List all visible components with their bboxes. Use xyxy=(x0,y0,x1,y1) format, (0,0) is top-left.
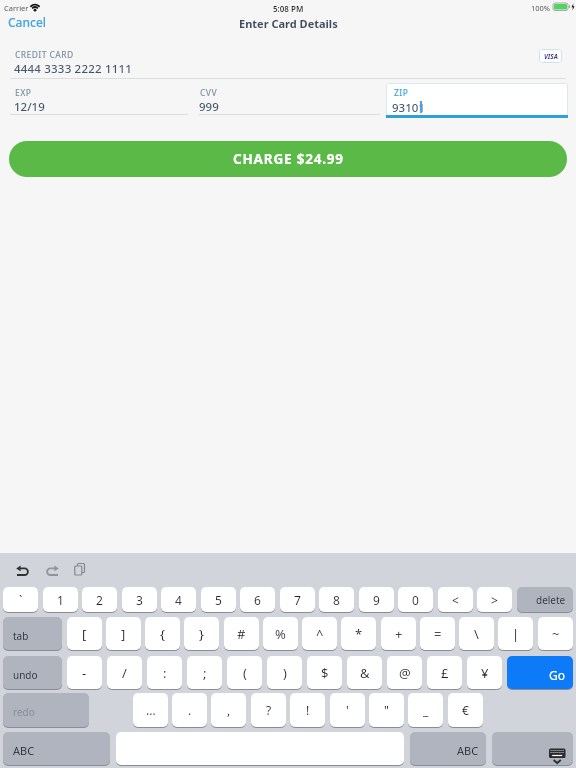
button[interactable]: Go xyxy=(507,656,573,689)
staticText: 4444 3333 2222 1111 xyxy=(14,61,133,77)
staticText: > xyxy=(491,592,498,608)
button[interactable] xyxy=(74,563,88,577)
button[interactable]: , xyxy=(211,693,246,727)
staticText: ... xyxy=(146,702,156,718)
button[interactable]: ( xyxy=(227,656,262,689)
button[interactable]: + xyxy=(381,617,416,650)
button[interactable]: ABC xyxy=(410,732,486,765)
staticText: = xyxy=(434,625,442,643)
button[interactable]: ¥ xyxy=(467,656,502,689)
button[interactable]: ! xyxy=(290,693,325,727)
staticText: CREDIT CARD xyxy=(15,49,74,61)
staticText: + xyxy=(395,625,403,643)
button[interactable]: 3 xyxy=(122,587,157,612)
staticText: . xyxy=(188,702,192,718)
button[interactable]: Cancel xyxy=(8,14,47,30)
button[interactable] xyxy=(116,732,404,765)
staticText: redo xyxy=(13,705,35,719)
button[interactable]: : xyxy=(147,656,182,689)
button[interactable]: 1 xyxy=(43,587,78,612)
button[interactable]: ` xyxy=(3,587,38,612)
staticText: Cancel xyxy=(8,14,47,30)
button[interactable]: $ xyxy=(307,656,342,689)
button[interactable]: } xyxy=(184,617,219,650)
button[interactable]: { xyxy=(145,617,180,650)
staticText: , xyxy=(227,702,231,718)
button[interactable]: - xyxy=(67,656,102,689)
staticText: Enter Card Details xyxy=(239,16,338,31)
button[interactable]: CHARGE $24.99 xyxy=(9,141,567,177)
button[interactable]: delete xyxy=(517,587,573,612)
button[interactable]: £ xyxy=(427,656,462,689)
staticText: " xyxy=(384,702,389,718)
button[interactable]: < xyxy=(438,587,473,612)
button[interactable]: @ xyxy=(387,656,422,689)
button[interactable]: ; xyxy=(187,656,222,689)
button[interactable]: & xyxy=(347,656,382,689)
staticText: ^ xyxy=(316,625,324,643)
staticText: \ xyxy=(474,625,479,643)
staticText: | xyxy=(512,625,520,643)
button[interactable]: = xyxy=(420,617,455,650)
staticText: $ xyxy=(321,664,329,682)
button[interactable]: ? xyxy=(251,693,286,727)
staticText: 93101 xyxy=(392,100,425,116)
staticText: _ xyxy=(423,702,429,718)
button[interactable] xyxy=(199,84,380,116)
staticText: delete xyxy=(536,593,566,607)
staticText: ¥ xyxy=(481,664,489,682)
button[interactable]: € xyxy=(448,693,483,727)
staticText: } xyxy=(199,625,204,643)
button[interactable] xyxy=(386,83,568,118)
staticText: undo xyxy=(13,668,38,682)
button[interactable]: 4 xyxy=(161,587,196,612)
staticText: Go xyxy=(549,667,565,683)
button[interactable]: ) xyxy=(267,656,302,689)
button[interactable]: 6 xyxy=(240,587,275,612)
button[interactable]: _ xyxy=(408,693,443,727)
button[interactable]: ABC xyxy=(3,732,110,765)
button[interactable] xyxy=(10,84,188,116)
button[interactable]: 0 xyxy=(398,587,433,612)
button[interactable]: > xyxy=(477,587,512,612)
staticText: CHARGE $24.99 xyxy=(233,150,344,168)
button[interactable]: 7 xyxy=(280,587,315,612)
button[interactable]: # xyxy=(224,617,259,650)
staticText: @ xyxy=(399,664,411,682)
staticText: CVV xyxy=(200,87,218,99)
staticText: ) xyxy=(283,664,287,682)
button[interactable]: % xyxy=(263,617,298,650)
button[interactable]: ... xyxy=(133,693,168,727)
button[interactable]: ] xyxy=(106,617,141,650)
button[interactable] xyxy=(492,732,573,765)
button[interactable] xyxy=(46,565,59,577)
staticText: ~ xyxy=(552,625,560,643)
button[interactable]: \ xyxy=(459,617,494,650)
button[interactable]: undo xyxy=(3,656,62,689)
button[interactable]: [ xyxy=(67,617,102,650)
button[interactable]: ~ xyxy=(538,617,573,650)
staticText: ! xyxy=(306,702,310,718)
button[interactable]: tab xyxy=(3,617,62,650)
staticText: & xyxy=(360,664,370,682)
button[interactable]: 5 xyxy=(201,587,236,612)
staticText: £ xyxy=(441,664,449,682)
button[interactable]: ' xyxy=(330,693,365,727)
staticText: - xyxy=(82,664,87,682)
button[interactable]: 2 xyxy=(82,587,117,612)
button[interactable]: redo xyxy=(3,693,89,727)
button[interactable]: . xyxy=(172,693,207,727)
button[interactable]: ^ xyxy=(302,617,337,650)
button[interactable]: " xyxy=(369,693,404,727)
staticText: [ xyxy=(82,625,87,643)
button[interactable]: 8 xyxy=(319,587,354,612)
button[interactable]: * xyxy=(341,617,376,650)
staticText: ABC xyxy=(13,743,35,758)
button[interactable]: | xyxy=(498,617,533,650)
staticText: 12/19 xyxy=(14,99,45,115)
staticText: % xyxy=(275,625,286,643)
button[interactable]: 9 xyxy=(359,587,394,612)
button[interactable]: / xyxy=(107,656,142,689)
staticText: 4 xyxy=(175,592,182,608)
button[interactable] xyxy=(16,565,29,577)
